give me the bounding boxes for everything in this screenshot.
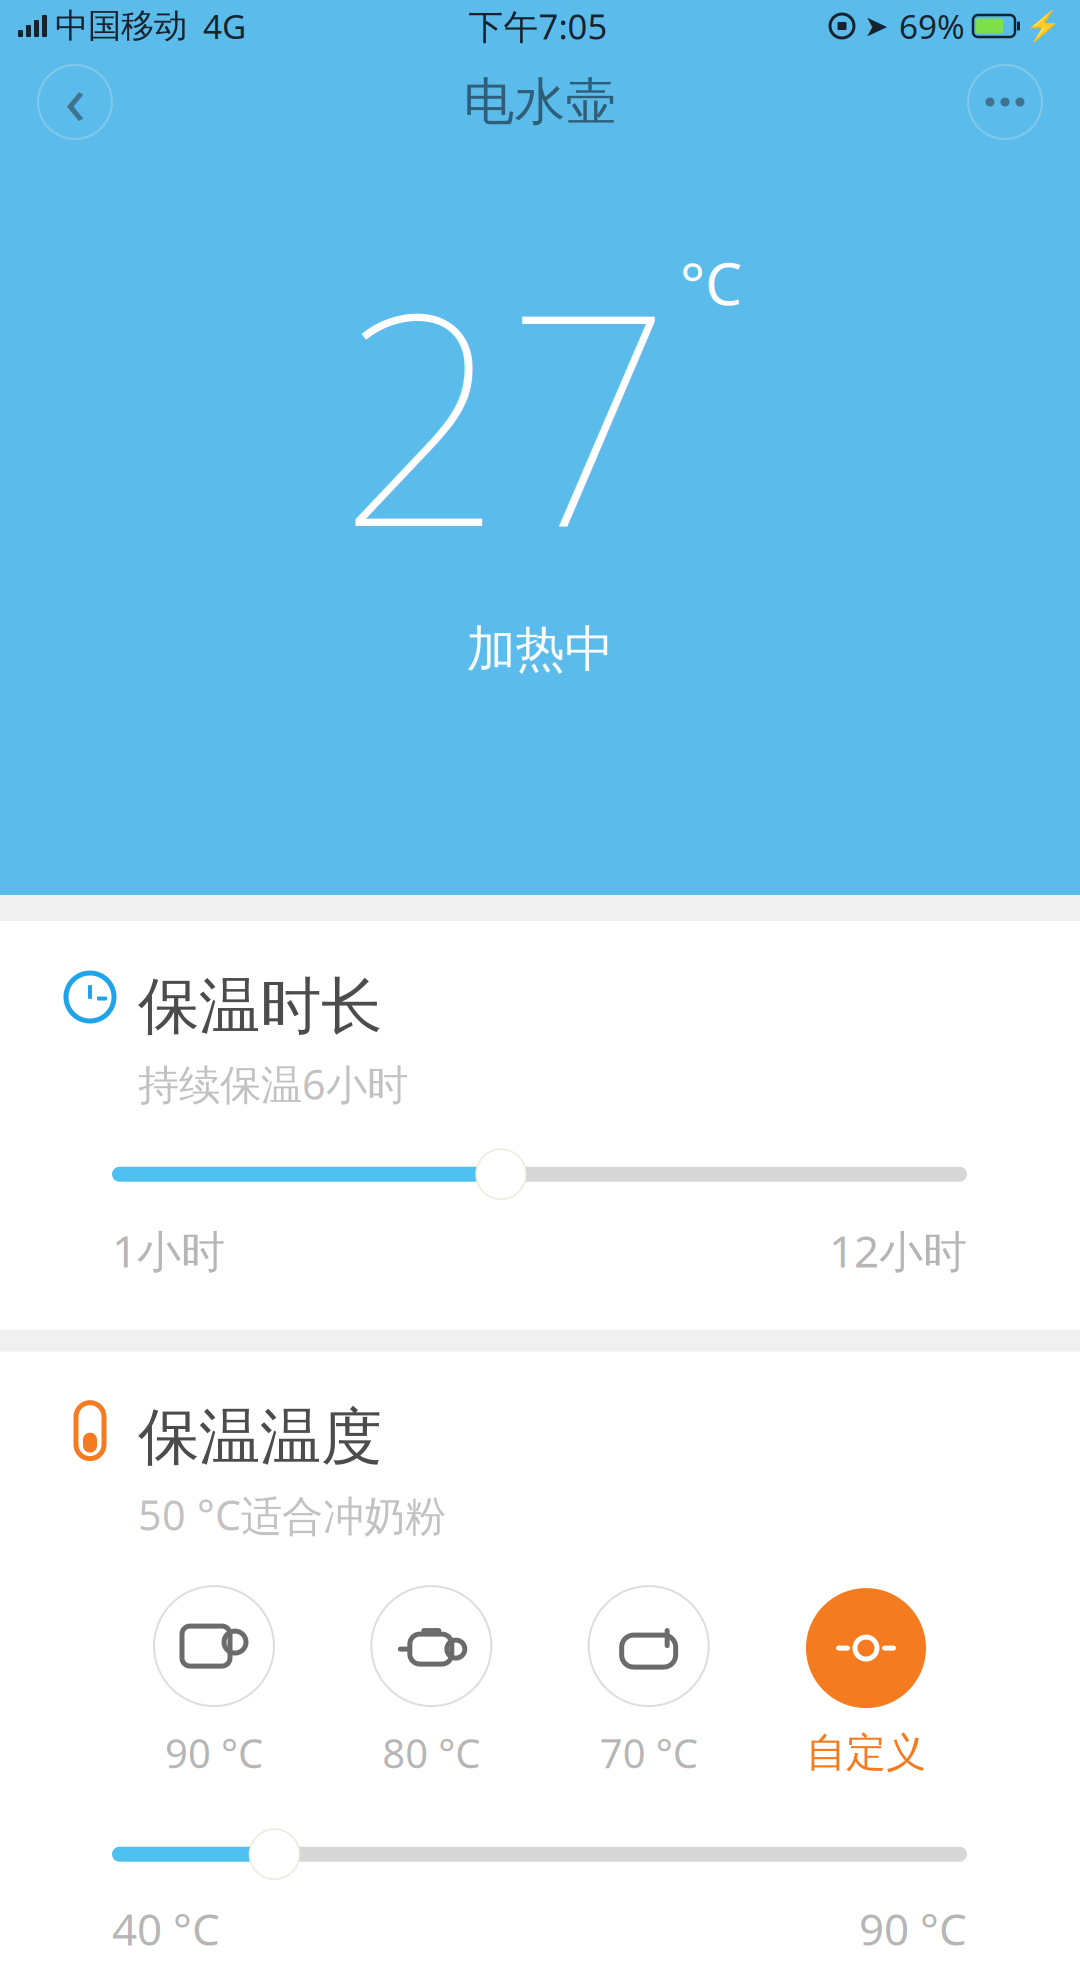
staticText: 保温时长 (138, 969, 382, 1044)
staticText: 4G (203, 4, 246, 48)
staticText: 90 °C (165, 1726, 263, 1779)
staticText: 80 °C (382, 1726, 480, 1779)
staticText: 自定义 (806, 1728, 926, 1777)
staticText: 27 (338, 217, 672, 607)
staticText: 电水壶 (463, 71, 616, 133)
staticText: 中国移动 (55, 5, 187, 46)
button[interactable]: More options (966, 63, 1044, 141)
staticText: 50 °C适合冲奶粉 (138, 1487, 446, 1542)
button[interactable]: Back (36, 63, 114, 141)
button[interactable]: 90 °C (152, 1584, 276, 1779)
staticText: 加热中 (466, 619, 613, 680)
staticText: 40 °C (112, 1899, 220, 1958)
staticText: ⚡ (1025, 9, 1062, 43)
staticText: 1小时 (112, 1221, 225, 1280)
button[interactable]: 70 °C (587, 1584, 711, 1779)
staticText: 69% (899, 4, 965, 48)
staticText: ➤ (864, 9, 889, 43)
staticText: 12小时 (829, 1221, 967, 1280)
button[interactable]: 80 °C (369, 1584, 493, 1779)
button[interactable]: 自定义 (804, 1586, 928, 1777)
staticText: ‹ (64, 52, 85, 144)
staticText: 下午7:05 (468, 3, 607, 49)
staticText: °C (680, 243, 742, 321)
staticText: 持续保温6小时 (138, 1056, 408, 1111)
staticText: 70 °C (600, 1726, 698, 1779)
staticText: 90 °C (859, 1899, 967, 1958)
staticText: 保温温度 (138, 1400, 382, 1475)
